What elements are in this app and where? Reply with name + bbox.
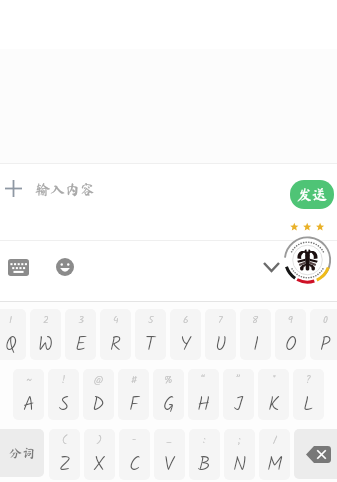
button[interactable]: Keyboard [2,252,34,282]
button[interactable]: ~ [13,369,44,420]
button[interactable]: 0 [310,309,337,360]
button[interactable]: : [189,429,220,480]
staticText: V [164,450,175,480]
button[interactable]: 4 [100,309,131,360]
staticText: ! [62,372,66,388]
button[interactable]: Emoji [50,252,80,282]
button[interactable]: ? [293,369,324,420]
staticText: - [132,432,137,448]
staticText: ” [236,372,241,388]
staticText: B [198,450,211,480]
button[interactable]: 8 [240,309,271,360]
button[interactable]: Backspace [294,429,337,479]
staticText: G [163,390,175,420]
button[interactable]: 6 [170,309,201,360]
button[interactable]: ! [48,369,79,420]
staticText: D [92,390,105,420]
staticText: % [164,372,173,388]
button[interactable]: # [118,369,149,420]
button[interactable]: * [258,369,289,420]
staticText: E [75,330,87,360]
staticText: U [215,330,227,360]
button[interactable]: Collapse panel [257,255,286,279]
staticText: “ [201,372,206,388]
button[interactable]: _ [154,429,185,480]
staticText: 1 [9,312,13,328]
staticText: 4 [113,312,119,328]
staticText: 0 [323,312,328,328]
staticText: ) [97,432,102,448]
staticText: 8 [252,312,259,328]
button[interactable]: 分词 [0,429,44,477]
staticText: Y [180,330,192,360]
button[interactable]: ) [84,429,115,480]
button[interactable]: ( [49,429,80,480]
button[interactable]: / [259,429,290,480]
staticText: R [110,330,121,360]
button[interactable]: Add attachment [2,177,24,199]
staticText: L [303,390,314,420]
staticText: K [268,390,280,420]
button[interactable]: 3 [65,309,96,360]
staticText: Z [59,450,71,480]
staticText: Q [5,330,17,360]
button[interactable]: % [153,369,184,420]
staticText: / [273,432,277,448]
button[interactable]: 2 [30,309,61,360]
staticText: ( [62,432,67,448]
staticText: 分词 [9,447,36,460]
button[interactable]: 5 [135,309,166,360]
button[interactable]: 发送 [290,180,334,209]
staticText: 7 [218,312,223,328]
staticText: H [197,390,210,420]
staticText: T [145,330,156,360]
staticText: X [93,450,106,480]
staticText: ; [238,432,242,448]
button[interactable]: ” [223,369,254,420]
button[interactable]: 1 [0,309,26,360]
staticText: N [233,450,247,480]
staticText: 3 [78,312,84,328]
button[interactable]: 7 [205,309,236,360]
staticText: : [203,432,206,448]
staticText: S [59,390,69,420]
staticText: 9 [288,312,293,328]
staticText: 6 [183,312,189,328]
button[interactable]: 9 [275,309,306,360]
staticText: I [253,330,259,360]
staticText: 5 [148,312,154,328]
button[interactable]: @ [83,369,114,420]
staticText: C [129,450,141,480]
staticText: P [320,330,331,360]
staticText: J [234,390,243,420]
staticText: 发送 [297,187,328,202]
staticText: A [23,390,35,420]
button[interactable]: “ [188,369,219,420]
staticText: ? [306,372,311,388]
staticText: * [272,372,276,388]
staticText: O [285,330,297,360]
staticText: W [38,330,53,360]
staticText: @ [94,372,104,388]
staticText: M [267,450,283,480]
staticText: ~ [26,372,32,388]
button[interactable]: - [119,429,150,480]
button[interactable]: ; [224,429,255,480]
staticText: _ [166,432,173,448]
staticText: 2 [43,312,49,328]
staticText: # [131,372,137,388]
staticText: F [129,390,139,420]
staticText: 输入内容 [35,182,96,197]
